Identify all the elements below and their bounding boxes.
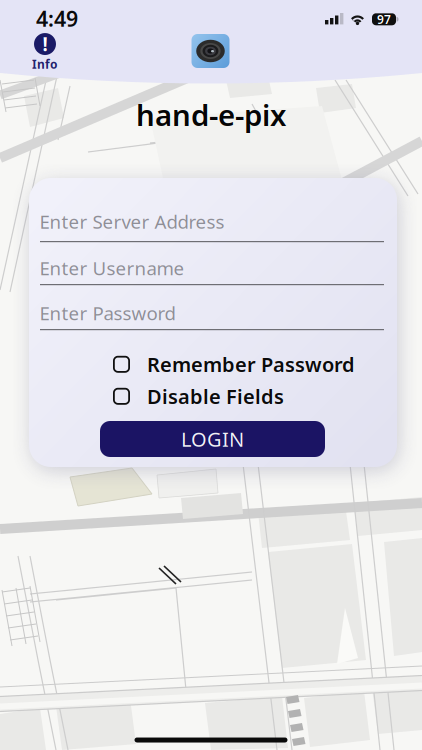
staticText: Remember Password (147, 351, 355, 378)
button[interactable]: Enter Server Address (39, 209, 384, 243)
staticText: Disable Fields (147, 383, 284, 410)
staticText: Enter Password (39, 300, 175, 325)
button[interactable]: LOGIN (100, 421, 325, 457)
staticText: hand-e-pix (136, 95, 286, 134)
staticText: LOGIN (181, 426, 244, 452)
button[interactable]: Enter Username (39, 255, 384, 286)
button[interactable]: Info (32, 33, 58, 72)
button[interactable]: Disable Fields (113, 383, 284, 410)
staticText: Info (32, 56, 58, 72)
button[interactable]: Remember Password (113, 351, 355, 378)
staticText: 4:49 (36, 4, 78, 33)
staticText: Enter Server Address (39, 209, 224, 234)
button[interactable]: Enter Password (39, 300, 384, 331)
staticText: ! (42, 32, 47, 56)
staticText: 97 (377, 11, 391, 27)
staticText: Enter Username (39, 255, 184, 280)
